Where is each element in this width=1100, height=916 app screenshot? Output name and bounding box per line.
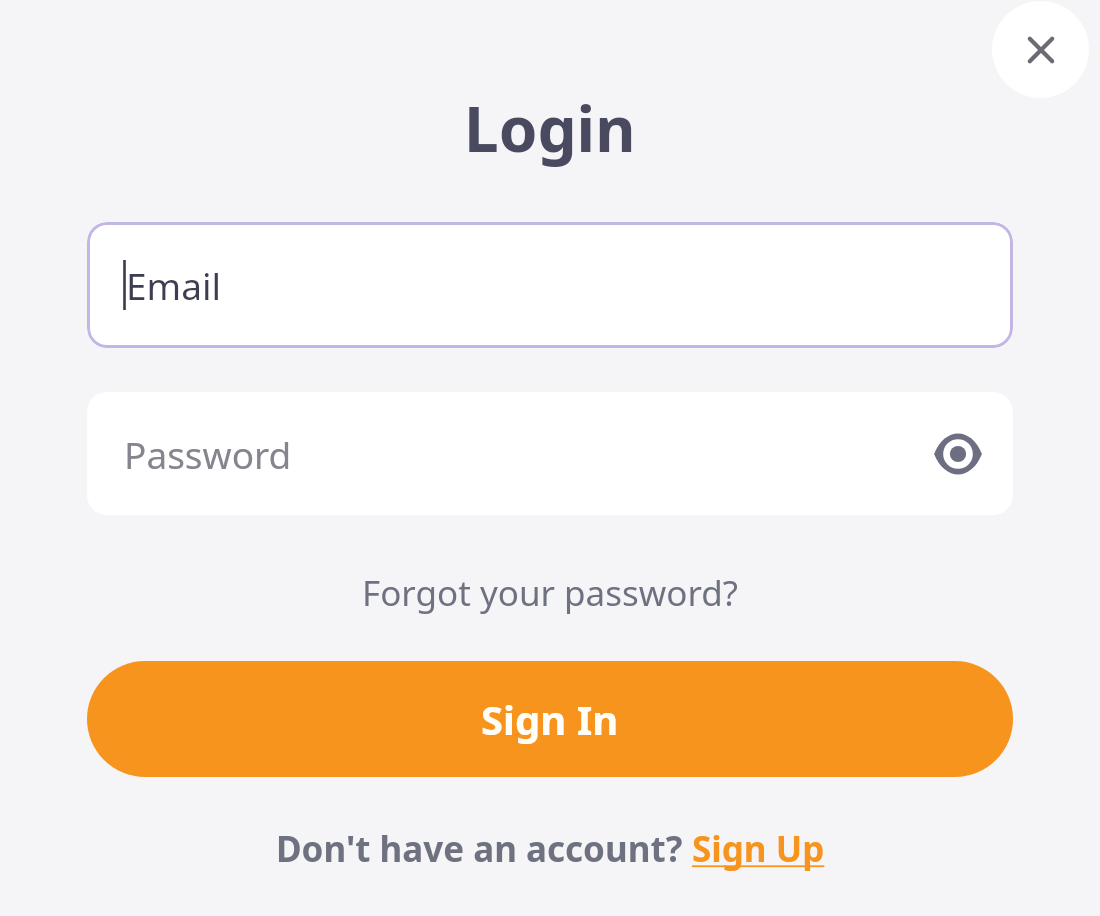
staticText: Sign In (481, 692, 619, 746)
staticText: Password (124, 429, 292, 479)
staticText: Email (126, 260, 222, 310)
button[interactable]: Show password (925, 421, 991, 487)
staticText: Login (464, 86, 636, 170)
button[interactable]: Close (992, 1, 1089, 98)
button[interactable]: Sign Up (692, 825, 825, 873)
button[interactable]: Sign In (87, 661, 1013, 777)
staticText: Forgot your password? (362, 569, 738, 617)
button[interactable]: Forgot your password? (352, 563, 748, 623)
button[interactable]: Password (87, 392, 1013, 515)
button[interactable]: Email (87, 222, 1013, 348)
staticText: Sign Up (692, 825, 825, 873)
staticText: Don't have an account? (276, 825, 692, 873)
